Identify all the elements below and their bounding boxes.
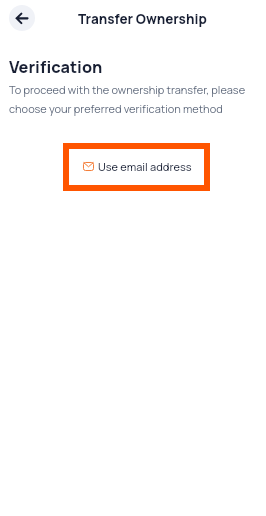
staticText: Use email address [98, 159, 192, 174]
button[interactable]: Use email address [69, 149, 204, 185]
staticText: To proceed with the ownership transfer, … [9, 82, 257, 116]
staticText: Verification [9, 56, 103, 78]
button[interactable]: Back [9, 5, 35, 31]
staticText: Transfer Ownership [78, 10, 207, 28]
